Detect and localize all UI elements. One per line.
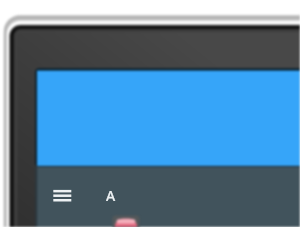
button[interactable]: A	[99, 183, 123, 208]
button[interactable]: App icon	[111, 214, 141, 227]
staticText: A	[106, 186, 116, 205]
button[interactable]: Menu	[49, 183, 75, 207]
